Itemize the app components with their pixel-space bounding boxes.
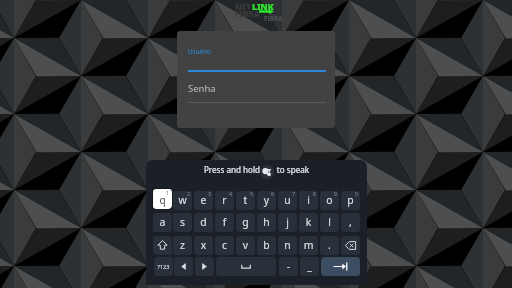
button[interactable]: Backspace [341,236,360,255]
staticText: 4 [229,191,232,197]
staticText: g [236,215,255,229]
button[interactable]: u [278,191,297,210]
button[interactable]: . [320,236,339,255]
button[interactable]: Move cursor right [195,257,214,276]
button[interactable]: f [215,213,234,232]
button[interactable]: t [236,191,255,210]
button[interactable]: Usuário [188,39,326,72]
staticText: s [173,215,192,229]
button[interactable]: v [236,236,255,255]
staticText: j [278,215,297,229]
staticText: - [279,259,298,273]
button[interactable]: l [320,213,339,232]
staticText: 2 [187,191,190,197]
staticText: 3 [208,191,211,197]
staticText: q [153,193,172,207]
button[interactable]: h [257,213,276,232]
staticText: a [153,215,172,229]
staticText: Press and hold to speak [146,164,367,175]
staticText: 6 [271,191,274,197]
staticText: y [257,193,276,207]
staticText: p [341,193,360,207]
staticText: b [257,238,276,252]
staticText: v [236,238,255,252]
staticText: 7 [292,191,295,197]
button[interactable]: n [278,236,297,255]
staticText: FIBRA [235,8,260,19]
staticText: e [194,193,213,207]
button[interactable]: r [215,191,234,210]
staticText: f [215,215,234,229]
staticText: LINK [252,1,274,13]
staticText: z [173,238,192,252]
button[interactable]: _ [300,257,319,276]
staticText: l [320,215,339,229]
staticText: ?123 [154,263,173,271]
button[interactable]: d [194,213,213,232]
staticText: _ [300,259,319,273]
staticText: FIBRA [264,14,283,22]
staticText: u [278,193,297,207]
staticText: h [257,215,276,229]
button[interactable]: Enter [321,257,360,276]
staticText: Senha [188,82,216,95]
button[interactable]: p [341,191,360,210]
button[interactable]: i [299,191,318,210]
button[interactable]: k [299,213,318,232]
staticText: 9 [334,191,337,197]
button[interactable]: ?123 [154,257,173,276]
button[interactable]: b [257,236,276,255]
button[interactable]: Senha [188,79,326,104]
staticText: o [320,193,339,207]
staticText: 5 [250,191,253,197]
staticText: NET [235,1,251,12]
button[interactable]: , [341,213,360,232]
staticText: 0 [355,191,358,197]
staticText: r [215,193,234,207]
button[interactable]: c [215,236,234,255]
staticText: . [320,238,339,252]
button[interactable]: Space [216,257,276,276]
staticText: m [299,238,318,252]
button[interactable]: y [257,191,276,210]
staticText: Usuário [188,47,211,55]
staticText: k [299,215,318,229]
button[interactable]: Shift [153,236,172,255]
staticText: w [173,193,192,207]
button[interactable]: w [173,191,192,210]
button[interactable]: NET [234,0,280,21]
staticText: 1 [166,189,170,196]
button[interactable]: x [194,236,213,255]
button[interactable]: a [153,213,172,232]
button[interactable]: z [173,236,192,255]
staticText: d [194,215,213,229]
button[interactable]: e [194,191,213,210]
button[interactable]: g [236,213,255,232]
button[interactable]: Press and hold to speak [146,161,367,187]
staticText: t [236,193,255,207]
button[interactable]: q [152,188,172,209]
button[interactable]: - [279,257,298,276]
staticText: n [278,238,297,252]
button[interactable]: s [173,213,192,232]
staticText: i [299,193,318,207]
staticText: c [215,238,234,252]
button[interactable]: o [320,191,339,210]
staticText: x [194,238,213,252]
button[interactable]: m [299,236,318,255]
button[interactable]: j [278,213,297,232]
staticText: 8 [313,191,316,197]
button[interactable]: Move cursor left [174,257,193,276]
staticText: , [341,215,360,229]
